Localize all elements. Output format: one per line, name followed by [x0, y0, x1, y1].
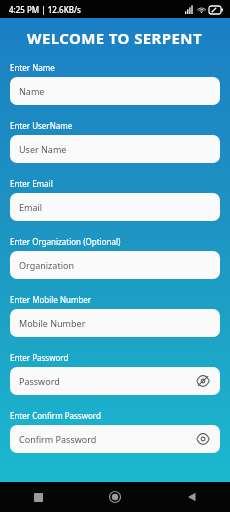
staticText: Enter UserName: [10, 120, 73, 131]
staticText: Enter Password: [10, 352, 69, 363]
staticText: WELCOME TO SERPENT: [27, 28, 203, 48]
staticText: Mobile Number: [19, 317, 86, 329]
button[interactable]: Email: [10, 193, 220, 221]
staticText: Name: [19, 85, 45, 97]
button[interactable]: Confirm Password: [10, 425, 220, 453]
button[interactable]: Password: [10, 367, 220, 395]
staticText: Enter Name: [10, 62, 55, 73]
button[interactable]: Mobile Number: [10, 309, 220, 337]
button[interactable]: Hide password: [195, 373, 211, 389]
staticText: User Name: [19, 143, 67, 155]
button[interactable]: User Name: [10, 135, 220, 163]
button[interactable]: Name: [10, 77, 220, 105]
staticText: Password: [19, 375, 60, 387]
button[interactable]: Show password: [195, 431, 211, 447]
button[interactable]: Organization: [10, 251, 220, 279]
staticText: Enter Confirm Password: [10, 410, 101, 421]
staticText: 4:25 PM | 12.6KB/s: [9, 4, 81, 15]
staticText: Organization: [19, 259, 74, 271]
staticText: Email: [19, 201, 43, 213]
staticText: Enter Organization (Optional): [10, 236, 121, 247]
staticText: Enter Mobile Number: [10, 294, 92, 305]
button[interactable]: Home: [76, 482, 153, 512]
staticText: Enter Email: [10, 178, 53, 189]
staticText: Confirm Password: [19, 433, 97, 445]
button[interactable]: Recent apps: [0, 482, 76, 512]
button[interactable]: Back: [153, 482, 230, 512]
